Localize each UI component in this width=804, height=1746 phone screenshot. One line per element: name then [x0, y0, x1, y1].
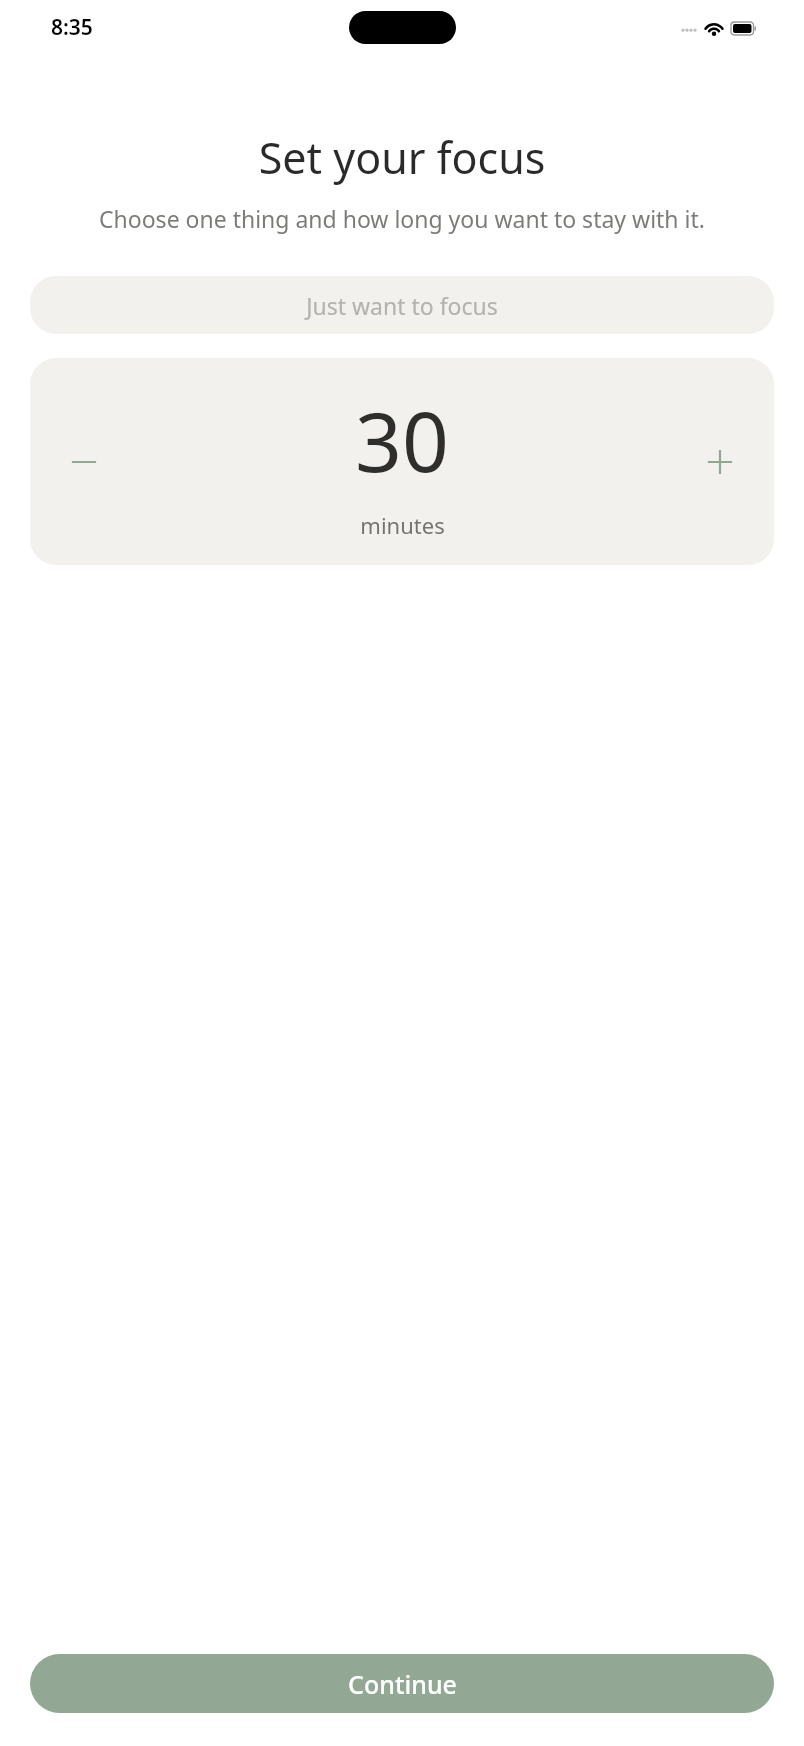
button[interactable]: Increase minutes — [692, 434, 748, 490]
button[interactable]: Continue — [30, 1654, 774, 1713]
staticText: 8:35 — [51, 13, 93, 42]
staticText: Set your focus — [0, 128, 804, 187]
button[interactable]: Decrease minutes — [56, 434, 112, 490]
staticText: Choose one thing and how long you want t… — [22, 203, 782, 234]
staticText: 30 — [355, 384, 449, 496]
staticText: minutes — [360, 510, 445, 540]
button[interactable]: Just want to focus — [30, 276, 774, 334]
staticText: Continue — [348, 1667, 457, 1701]
staticText: Just want to focus — [306, 290, 498, 321]
